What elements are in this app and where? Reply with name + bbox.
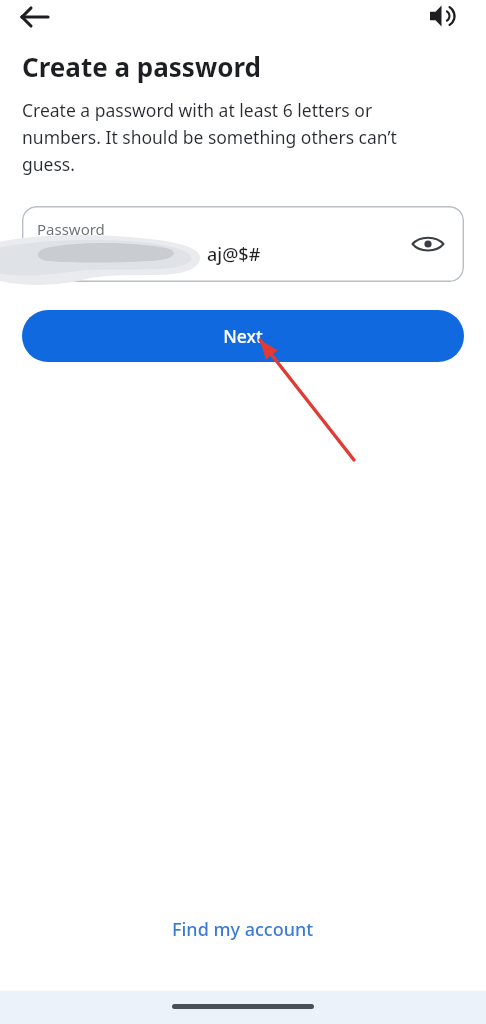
button[interactable]: Password — [22, 206, 464, 282]
staticText: Create a password — [22, 49, 261, 84]
button[interactable]: Back — [8, 0, 64, 34]
staticText: Find my account — [172, 917, 314, 942]
staticText: Next — [223, 324, 263, 348]
button[interactable]: Find my account — [156, 913, 330, 946]
button[interactable]: Next — [22, 310, 464, 362]
button[interactable]: Volume — [418, 0, 470, 32]
staticText: Password — [37, 219, 105, 239]
staticText: aj@$# — [207, 242, 261, 267]
staticText: Create a password with at least 6 letter… — [22, 98, 440, 176]
button[interactable]: Show password — [406, 222, 450, 266]
